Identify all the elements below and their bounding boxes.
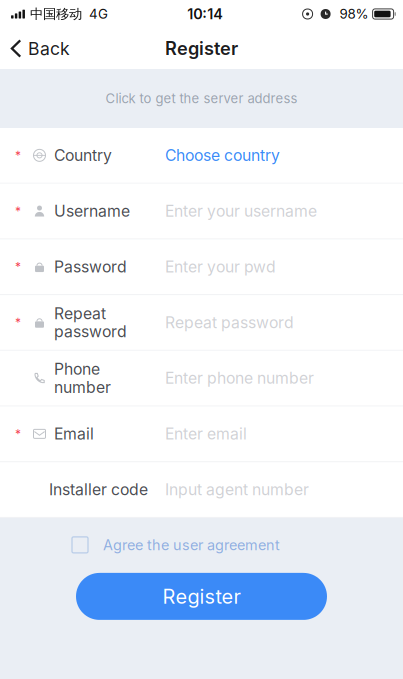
staticText: Input agent number	[165, 480, 309, 499]
staticText: Installer code	[49, 480, 148, 499]
staticText: 10:14	[187, 5, 223, 23]
staticText: Repeat	[54, 304, 106, 323]
button[interactable]: *	[0, 239, 403, 295]
staticText: password	[54, 322, 127, 341]
staticText: Choose country	[165, 146, 280, 165]
staticText: Phone	[54, 360, 100, 379]
staticText: Agree the user agreement	[103, 536, 280, 554]
staticText: *	[15, 148, 21, 163]
staticText: Repeat password	[165, 313, 294, 332]
staticText: *	[15, 427, 21, 441]
staticText: Email	[54, 424, 94, 443]
staticText: 4G	[89, 6, 108, 22]
button[interactable]: Click to get the server address	[0, 69, 403, 128]
staticText: number	[54, 378, 111, 397]
staticText: *	[15, 315, 21, 330]
staticText: Password	[54, 257, 127, 276]
button[interactable]	[0, 351, 403, 406]
staticText: Register	[162, 584, 240, 608]
staticText: 98%	[340, 6, 369, 22]
staticText: Register	[165, 37, 238, 59]
button[interactable]: Register	[76, 573, 327, 620]
staticText: Enter phone number	[165, 369, 314, 388]
staticText: Click to get the server address	[105, 91, 297, 106]
button[interactable]: Agree the user agreement	[72, 536, 280, 554]
staticText: Country	[54, 146, 112, 165]
staticText: Back	[28, 38, 70, 59]
staticText: *	[15, 259, 21, 274]
staticText: 中国移动	[30, 6, 82, 22]
staticText: *	[15, 204, 21, 218]
staticText: Enter your pwd	[165, 257, 276, 276]
staticText: Enter your username	[165, 201, 317, 220]
button[interactable]: *	[0, 128, 403, 184]
staticText: Enter email	[165, 424, 247, 443]
staticText: Username	[54, 201, 130, 220]
button[interactable]: Installer code	[0, 462, 403, 518]
button[interactable]: *	[0, 184, 403, 239]
button[interactable]: *	[0, 406, 403, 462]
button[interactable]: *	[0, 295, 403, 351]
button[interactable]: Back	[0, 30, 80, 67]
